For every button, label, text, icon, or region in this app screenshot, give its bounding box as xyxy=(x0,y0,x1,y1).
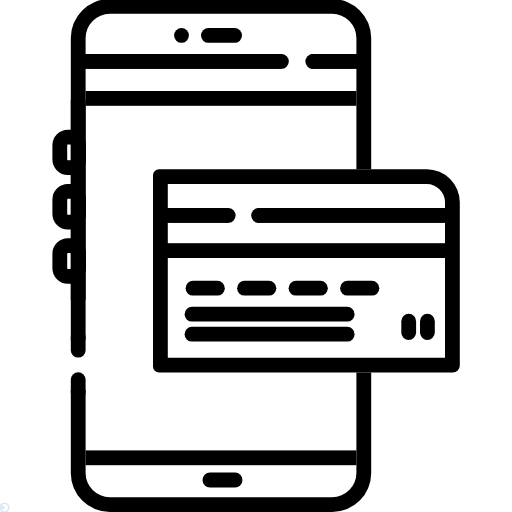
button[interactable]: Pay by card on your phone xyxy=(0,0,512,512)
